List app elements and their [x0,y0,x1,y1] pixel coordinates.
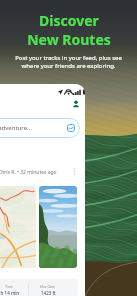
staticText: Elev Gain [40,284,56,289]
staticText: Post your tracks in your feed, plus see … [15,54,122,70]
button[interactable]: More options [71,168,78,175]
staticText: 1423 ft [41,290,56,296]
button[interactable]: Profile [72,100,80,108]
staticText: Discover [39,11,99,30]
staticText: Find an adventure... [0,124,32,132]
staticText: New Routes [27,30,111,49]
staticText: 1h 14 min [0,290,20,296]
button[interactable]: Find an adventure... [0,118,80,138]
staticText: Time [5,284,14,289]
staticText: Chris R. • 32 minutes ago [0,169,57,176]
